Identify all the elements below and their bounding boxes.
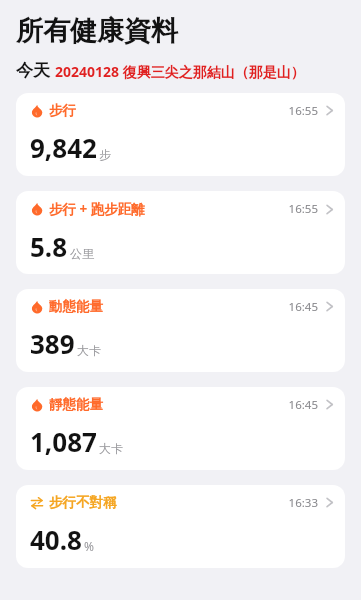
- button[interactable]: 步行不對稱: [16, 485, 345, 568]
- staticText: 16:55: [288, 103, 318, 119]
- staticText: 1,087: [30, 424, 97, 459]
- button[interactable]: 步行: [16, 93, 345, 176]
- staticText: 步行: [49, 102, 76, 119]
- staticText: %: [84, 538, 94, 554]
- button[interactable]: 靜態能量: [16, 387, 345, 470]
- staticText: 16:33: [288, 495, 318, 511]
- staticText: 步行不對稱: [49, 494, 117, 511]
- staticText: 公里: [70, 246, 94, 261]
- staticText: 9,842: [30, 130, 97, 165]
- staticText: 所有健康資料: [16, 14, 178, 48]
- staticText: 靜態能量: [49, 396, 103, 413]
- staticText: 16:55: [288, 201, 318, 217]
- staticText: 16:45: [288, 299, 318, 315]
- staticText: 16:45: [288, 397, 318, 413]
- staticText: 40.8: [30, 522, 82, 557]
- staticText: 5.8: [30, 229, 68, 264]
- staticText: 步: [99, 147, 111, 162]
- staticText: 步行 + 跑步距離: [49, 200, 145, 218]
- staticText: 389: [30, 326, 75, 361]
- staticText: 大卡: [99, 441, 123, 456]
- staticText: 大卡: [77, 343, 101, 358]
- staticText: 20240128 復興三尖之那結山（那是山）: [55, 62, 305, 81]
- button[interactable]: 步行 + 跑步距離: [16, 191, 345, 274]
- button[interactable]: 動態能量: [16, 289, 345, 372]
- staticText: 今天: [16, 60, 50, 81]
- staticText: 動態能量: [49, 298, 103, 315]
